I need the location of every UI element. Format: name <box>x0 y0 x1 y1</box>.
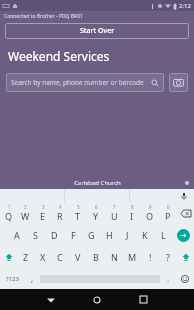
button[interactable]: 8 <box>123 202 141 224</box>
staticText: L <box>161 229 166 241</box>
staticText: 2 <box>24 204 27 210</box>
button[interactable]: Shift <box>0 246 17 268</box>
staticText: J <box>126 229 129 241</box>
button[interactable]: Back <box>28 289 74 310</box>
button[interactable]: 0 <box>159 202 177 224</box>
staticText: 4 <box>59 204 62 210</box>
button[interactable]: Shift <box>177 246 194 268</box>
staticText: , <box>31 273 34 284</box>
button[interactable]: Scan barcode <box>169 73 188 92</box>
staticText: 1 <box>8 204 11 210</box>
staticText: W <box>21 210 30 222</box>
staticText: E <box>40 210 46 222</box>
staticText: P <box>165 210 171 222</box>
staticText: Carlsbad Church <box>74 179 121 187</box>
staticText: N <box>111 251 118 263</box>
staticText: 8 <box>131 204 134 210</box>
button[interactable]: Backspace <box>177 202 194 224</box>
staticText: 0 <box>167 204 170 210</box>
staticText: 9 <box>149 204 152 210</box>
staticText: Weekend Services <box>8 48 110 64</box>
staticText: I <box>130 210 134 222</box>
button[interactable]: 9 <box>141 202 159 224</box>
button[interactable]: Search by name, phone number or barcode <box>6 73 164 92</box>
button[interactable]: Recent apps <box>120 289 166 310</box>
staticText: U <box>111 210 118 222</box>
button[interactable]: V <box>69 246 87 268</box>
staticText: D <box>51 229 58 241</box>
button[interactable]: ? <box>159 246 177 268</box>
staticText: ? <box>166 251 170 263</box>
button[interactable]: 5 <box>69 202 87 224</box>
button[interactable]: N <box>105 246 123 268</box>
staticText: 3 <box>42 204 45 210</box>
button[interactable]: Start Over <box>5 23 189 39</box>
button[interactable]: Z <box>17 246 34 268</box>
button[interactable]: B <box>87 246 105 268</box>
staticText: V <box>75 251 81 263</box>
staticText: F <box>71 229 76 241</box>
staticText: G <box>88 229 95 241</box>
button[interactable]: K <box>136 224 154 246</box>
button[interactable]: G <box>82 224 100 246</box>
staticText: M <box>128 251 137 263</box>
button[interactable]: X <box>34 246 51 268</box>
button[interactable]: 1 <box>0 202 17 224</box>
button[interactable]: 7 <box>105 202 123 224</box>
staticText: A <box>14 229 20 241</box>
staticText: C <box>57 251 63 263</box>
button[interactable]: L <box>154 224 172 246</box>
staticText: Q <box>5 210 13 222</box>
button[interactable]: Enter <box>172 224 194 246</box>
staticText: ! <box>149 251 152 263</box>
staticText: R <box>57 210 63 222</box>
staticText: 5 <box>77 204 80 210</box>
staticText: Y <box>93 210 99 222</box>
button[interactable]: , <box>24 268 40 289</box>
button[interactable]: F <box>64 224 82 246</box>
button[interactable]: S <box>26 224 45 246</box>
staticText: K <box>142 229 148 241</box>
button[interactable]: . <box>160 268 176 289</box>
button[interactable]: 3 <box>34 202 51 224</box>
staticText: Connected to Brother - PDQ BR01 <box>4 13 83 20</box>
staticText: T <box>75 210 81 222</box>
button[interactable]: D <box>45 224 64 246</box>
staticText: O <box>146 210 154 222</box>
button[interactable]: J <box>118 224 136 246</box>
button[interactable]: H <box>100 224 118 246</box>
button[interactable]: C <box>51 246 69 268</box>
button[interactable]: 4 <box>51 202 69 224</box>
staticText: 2:12 <box>179 2 191 10</box>
staticText: 6 <box>95 204 98 210</box>
button[interactable]: More suggestions <box>185 181 189 185</box>
staticText: B <box>93 251 99 263</box>
staticText: . <box>167 273 170 284</box>
staticText: Z <box>23 251 29 263</box>
staticText: ?123 <box>6 275 19 283</box>
staticText: H <box>106 229 113 241</box>
button[interactable]: M <box>123 246 141 268</box>
staticText: S <box>33 229 38 241</box>
button[interactable]: ! <box>141 246 159 268</box>
button[interactable]: ?123 <box>0 268 24 289</box>
staticText: Search by name, phone number or barcode <box>11 78 151 87</box>
button[interactable]: A <box>7 224 26 246</box>
staticText: Start Over <box>80 26 115 36</box>
button[interactable]: Voice input <box>179 191 188 200</box>
button[interactable]: Emoji <box>176 268 194 289</box>
staticText: 7 <box>113 204 116 210</box>
button[interactable]: 2 <box>17 202 34 224</box>
button[interactable]: 6 <box>87 202 105 224</box>
staticText: X <box>40 251 46 263</box>
button[interactable]: Home <box>74 289 120 310</box>
